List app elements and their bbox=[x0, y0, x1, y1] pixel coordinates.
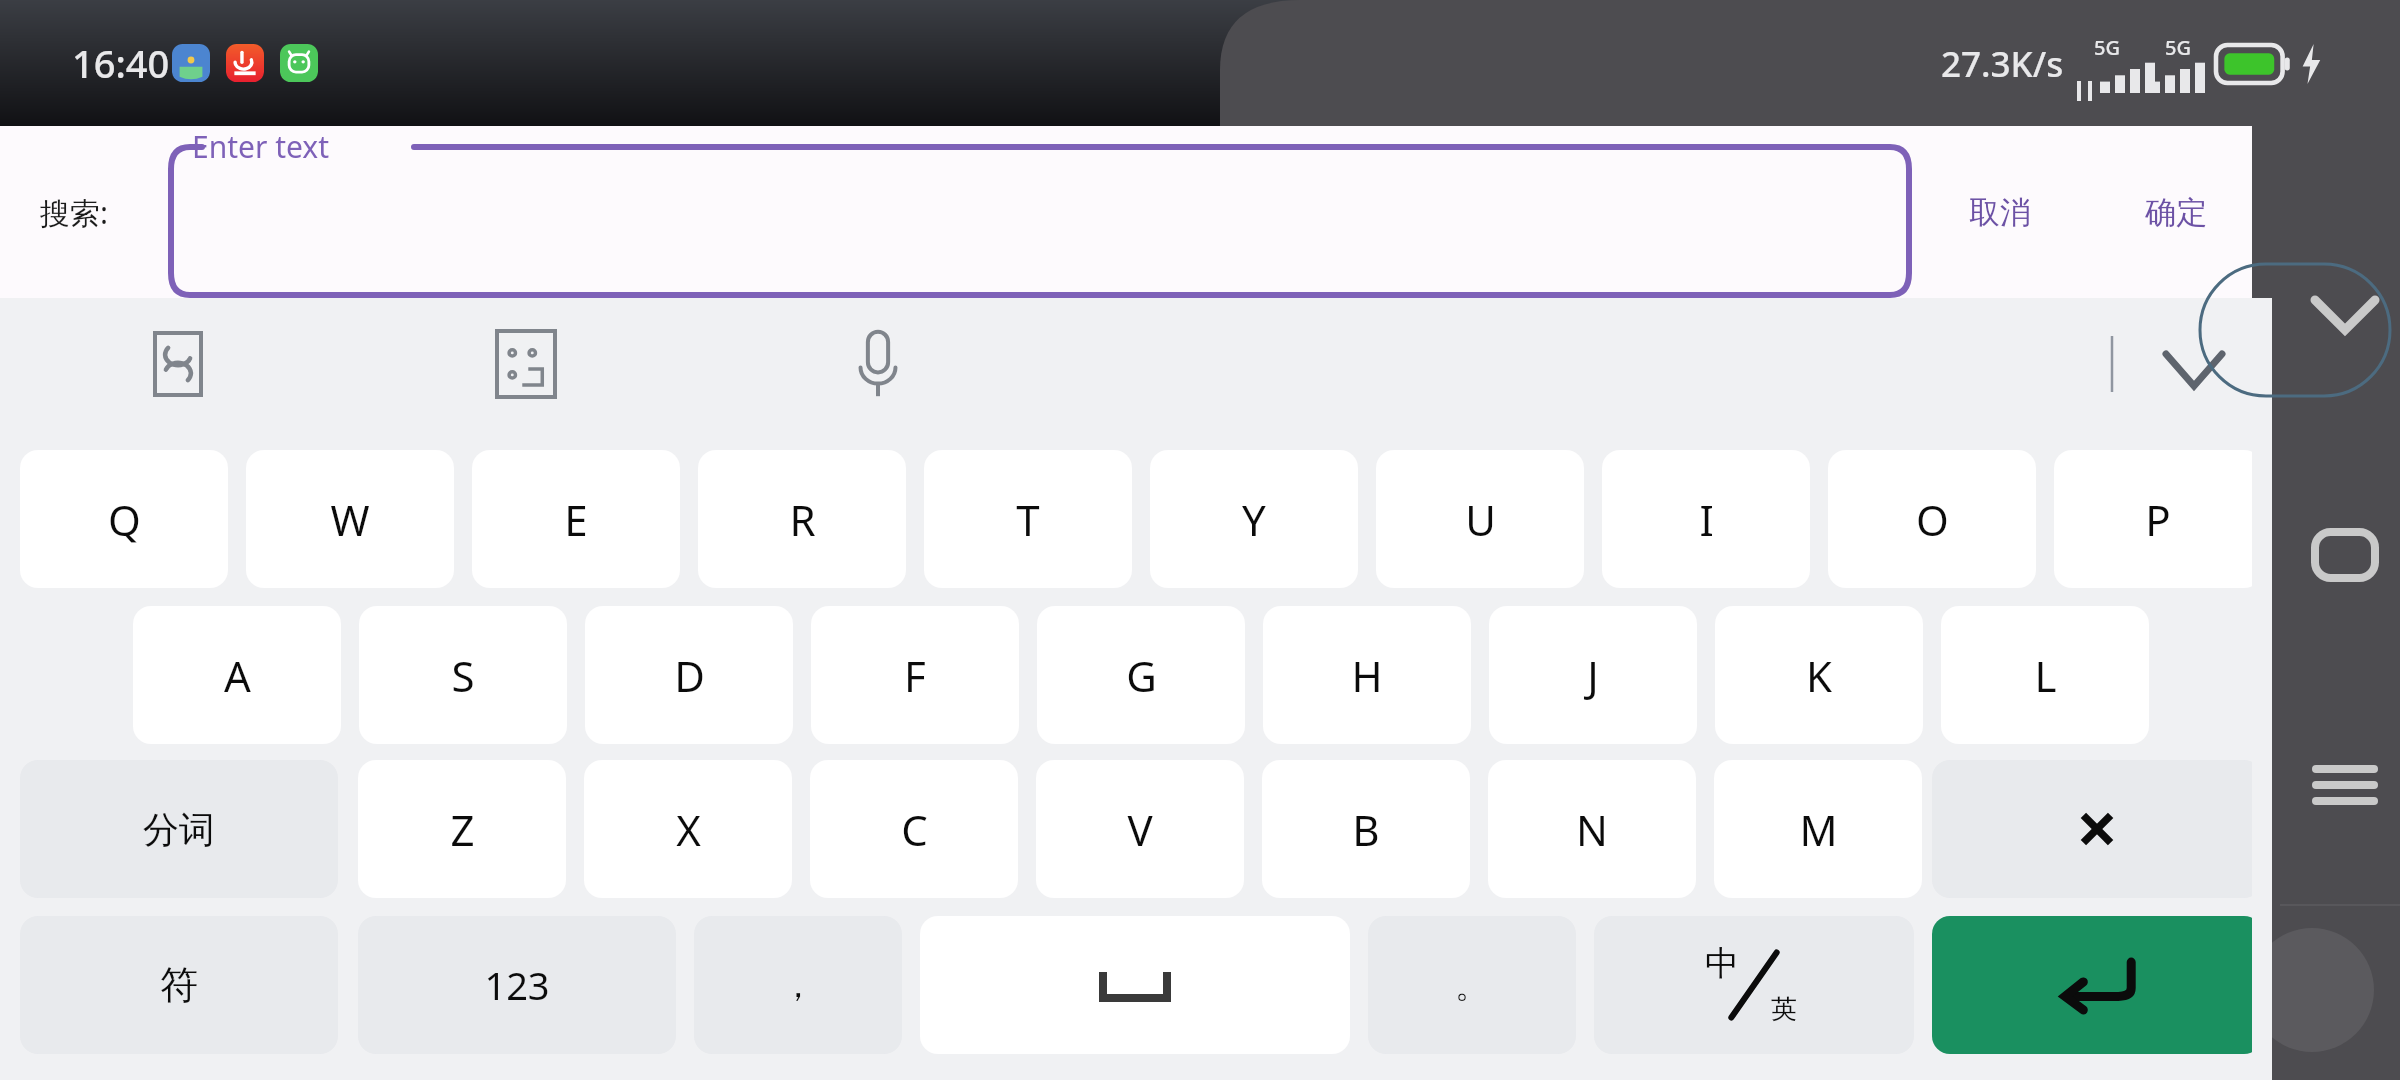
button[interactable]: 取消 bbox=[1930, 157, 2070, 267]
staticText: S bbox=[451, 647, 475, 704]
button[interactable]: K bbox=[1715, 606, 1923, 744]
staticText: 。 bbox=[1455, 964, 1489, 1007]
staticText: Q bbox=[108, 491, 141, 548]
button[interactable]: Y bbox=[1150, 450, 1358, 588]
staticText: J bbox=[1587, 647, 1599, 704]
button[interactable]: ， bbox=[694, 916, 902, 1054]
button[interactable]: 123 bbox=[358, 916, 676, 1054]
button[interactable]: L bbox=[1941, 606, 2149, 744]
staticText: T bbox=[1016, 491, 1040, 548]
staticText: H bbox=[1351, 647, 1383, 704]
button[interactable]: A bbox=[133, 606, 341, 744]
button[interactable]: C bbox=[810, 760, 1018, 898]
button[interactable]: T bbox=[924, 450, 1132, 588]
staticText: G bbox=[1126, 647, 1157, 704]
button[interactable]: 符 bbox=[20, 916, 338, 1054]
button[interactable]: P bbox=[2054, 450, 2262, 588]
button[interactable]: D bbox=[585, 606, 793, 744]
staticText: I bbox=[1699, 491, 1714, 548]
button[interactable]: Menu bbox=[2290, 730, 2400, 840]
button[interactable]: M bbox=[1714, 760, 1922, 898]
button[interactable]: B bbox=[1262, 760, 1470, 898]
staticText: V bbox=[1127, 801, 1153, 858]
staticText: P bbox=[2145, 491, 2171, 548]
staticText: 英 bbox=[1771, 993, 1797, 1026]
staticText: U bbox=[1465, 491, 1496, 548]
button[interactable]: Space bbox=[920, 916, 1350, 1054]
staticText: O bbox=[1916, 491, 1949, 548]
staticText: 27.3K/s bbox=[1941, 40, 2064, 88]
staticText: F bbox=[904, 647, 926, 704]
staticText: M bbox=[1799, 801, 1838, 858]
staticText: L bbox=[2034, 647, 2057, 704]
staticText: Y bbox=[1242, 491, 1266, 548]
staticText: 5G bbox=[2165, 34, 2191, 61]
button[interactable]: U bbox=[1376, 450, 1584, 588]
button[interactable]: Back bbox=[2290, 270, 2400, 360]
staticText: 123 bbox=[484, 959, 550, 1011]
staticText: X bbox=[676, 801, 701, 858]
button[interactable]: Enter bbox=[1932, 916, 2262, 1054]
button[interactable]: N bbox=[1488, 760, 1696, 898]
staticText: W bbox=[330, 491, 370, 548]
button[interactable]: Hide keyboard bbox=[2150, 326, 2238, 414]
staticText: 5G bbox=[2094, 34, 2120, 61]
button[interactable]: S bbox=[359, 606, 567, 744]
button[interactable]: 分词 bbox=[20, 760, 338, 898]
button[interactable]: E bbox=[472, 450, 680, 588]
button[interactable]: 确定 bbox=[2106, 157, 2246, 267]
button[interactable]: Enter text bbox=[168, 142, 1912, 298]
button[interactable]: V bbox=[1036, 760, 1244, 898]
staticText: 16:40 bbox=[72, 37, 170, 89]
staticText: 分词 bbox=[143, 807, 215, 852]
button[interactable]: F bbox=[811, 606, 1019, 744]
button[interactable]: H bbox=[1263, 606, 1471, 744]
button[interactable]: J bbox=[1489, 606, 1697, 744]
button[interactable]: G bbox=[1037, 606, 1245, 744]
button[interactable]: Voice input bbox=[840, 326, 916, 402]
button[interactable]: I bbox=[1602, 450, 1810, 588]
button[interactable]: W bbox=[246, 450, 454, 588]
staticText: 符 bbox=[160, 961, 198, 1009]
button[interactable]: Backspace bbox=[1932, 760, 2262, 898]
button[interactable]: Q bbox=[20, 450, 228, 588]
button[interactable]: Sogou input bbox=[140, 326, 216, 402]
staticText: A bbox=[224, 647, 251, 704]
button[interactable]: R bbox=[698, 450, 906, 588]
button[interactable]: Switch Chinese English bbox=[1594, 916, 1914, 1054]
staticText: 中 bbox=[1705, 942, 1739, 985]
staticText: D bbox=[674, 647, 705, 704]
staticText: N bbox=[1576, 801, 1608, 858]
staticText: Enter text bbox=[192, 126, 330, 167]
staticText: C bbox=[901, 801, 928, 858]
staticText: ， bbox=[781, 964, 815, 1007]
staticText: 确定 bbox=[2145, 193, 2207, 232]
staticText: B bbox=[1352, 801, 1380, 858]
button[interactable]: O bbox=[1828, 450, 2036, 588]
button[interactable]: X bbox=[584, 760, 792, 898]
staticText: E bbox=[564, 491, 588, 548]
button[interactable]: 。 bbox=[1368, 916, 1576, 1054]
button[interactable]: Input settings bbox=[488, 326, 564, 402]
staticText: R bbox=[789, 491, 816, 548]
staticText: Z bbox=[450, 801, 475, 858]
staticText: 搜索: bbox=[40, 192, 109, 233]
button[interactable]: Home bbox=[2290, 500, 2400, 610]
button[interactable]: Z bbox=[358, 760, 566, 898]
staticText: K bbox=[1806, 647, 1832, 704]
staticText: 取消 bbox=[1969, 193, 2031, 232]
